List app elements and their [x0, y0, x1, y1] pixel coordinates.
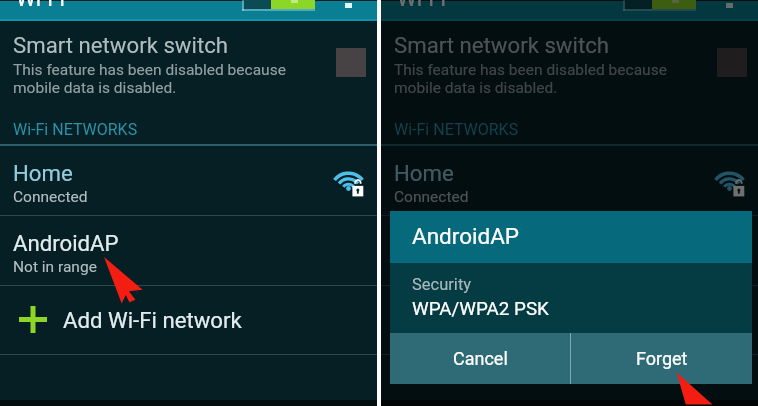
- staticText: AndroidAP: [394, 230, 500, 256]
- staticText: Smart network switch: [13, 32, 229, 58]
- staticText: Home: [394, 160, 454, 186]
- button[interactable]: Smart network switch: [0, 21, 377, 124]
- button[interactable]: Smart network switch: [381, 21, 758, 124]
- staticText: Smart network switch: [394, 32, 610, 58]
- staticText: WPA/WPA2 PSK: [412, 298, 549, 320]
- staticText: Not in range: [394, 258, 478, 276]
- staticText: Wi-Fi: [16, 0, 65, 11]
- staticText: Add Wi-Fi network: [444, 307, 623, 333]
- staticText: This feature has been disabled because m…: [394, 61, 667, 97]
- button[interactable]: Wi-Fi on off switch: [623, 0, 696, 11]
- staticText: AndroidAP: [13, 230, 119, 256]
- button[interactable]: AndroidAP: [381, 216, 758, 285]
- staticText: Connected: [394, 188, 469, 206]
- staticText: Cancel: [453, 348, 508, 369]
- other: Connected secured Wi-Fi, full signal: [325, 166, 366, 197]
- staticText: This feature has been disabled because m…: [13, 61, 286, 97]
- staticText: Wi-Fi NETWORKS: [394, 120, 519, 139]
- staticText: Not in range: [13, 258, 97, 276]
- staticText: AndroidAP: [412, 223, 520, 249]
- other: Connected secured Wi-Fi, full signal: [706, 166, 747, 197]
- button[interactable]: Home: [381, 146, 758, 215]
- button[interactable]: AndroidAP: [0, 216, 377, 285]
- staticText: Add Wi-Fi network: [63, 307, 242, 333]
- staticText: Security: [412, 275, 472, 294]
- button[interactable]: Add Wi-Fi network: [0, 286, 377, 354]
- button[interactable]: Add Wi-Fi network: [381, 286, 758, 354]
- staticText: Wi-Fi: [397, 0, 446, 11]
- staticText: Connected: [13, 188, 88, 206]
- button[interactable]: Forget: [571, 333, 752, 384]
- staticText: Forget: [636, 348, 688, 369]
- staticText: Home: [13, 160, 73, 186]
- button[interactable]: Wi-Fi on off switch: [242, 0, 315, 11]
- staticText: Wi-Fi NETWORKS: [13, 120, 138, 139]
- button[interactable]: Cancel: [390, 333, 570, 384]
- button[interactable]: Home: [0, 146, 377, 215]
